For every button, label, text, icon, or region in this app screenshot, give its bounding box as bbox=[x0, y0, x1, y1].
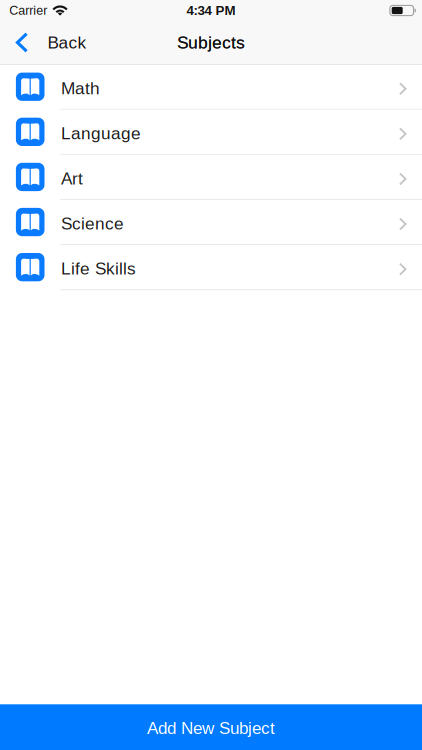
staticText: Subjects bbox=[177, 33, 245, 52]
staticText: Science bbox=[61, 214, 124, 233]
button[interactable]: Math bbox=[0, 65, 422, 110]
button[interactable]: Back bbox=[0, 21, 99, 64]
staticText: Back bbox=[48, 33, 87, 52]
button[interactable]: Art bbox=[0, 155, 422, 200]
button[interactable]: Science bbox=[0, 200, 422, 245]
staticText: Add New Subject bbox=[147, 719, 275, 738]
staticText: Carrier bbox=[9, 3, 47, 17]
staticText: Language bbox=[61, 124, 141, 143]
staticText: Subjects bbox=[177, 33, 245, 52]
staticText: 4:34 PM bbox=[186, 3, 235, 18]
staticText: Art bbox=[61, 169, 83, 188]
staticText: Life Skills bbox=[61, 259, 136, 278]
button[interactable]: Life Skills bbox=[0, 245, 422, 290]
staticText: Math bbox=[61, 79, 100, 98]
button[interactable]: Language bbox=[0, 110, 422, 155]
button[interactable]: Add New Subject bbox=[0, 704, 422, 750]
